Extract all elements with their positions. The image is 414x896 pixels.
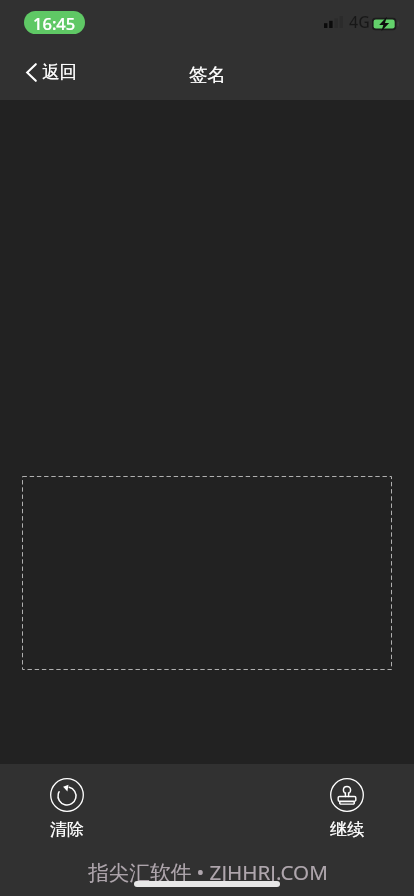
staticText: 指尖汇软件 • ZJHHRJ.COM: [88, 858, 328, 886]
staticText: 继续: [330, 819, 364, 840]
staticText: 4G: [349, 11, 370, 33]
staticText: 签名: [189, 63, 226, 86]
button[interactable]: Continue: [324, 778, 370, 840]
button[interactable]: Clear: [44, 778, 90, 840]
button[interactable]: 返回: [0, 53, 91, 91]
staticText: 16:45: [33, 12, 76, 34]
staticText: 返回: [42, 61, 77, 83]
staticText: 清除: [50, 819, 84, 840]
